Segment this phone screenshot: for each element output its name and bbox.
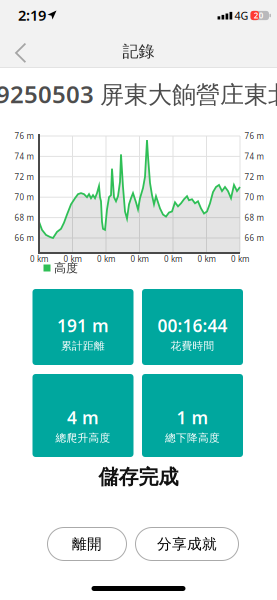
staticText: 76 m [14, 131, 33, 141]
staticText: 分享成就 [157, 535, 217, 553]
staticText: 2:19 [18, 5, 46, 25]
staticText: 儲存完成 [98, 465, 178, 489]
button[interactable]: Back [9, 38, 31, 68]
staticText: 72 m [244, 171, 263, 182]
staticText: 68 m [244, 212, 263, 223]
staticText: 0 km [63, 254, 81, 264]
staticText: 66 m [14, 233, 33, 243]
staticText: 0 km [30, 254, 48, 264]
staticText: 4 m [67, 406, 99, 429]
staticText: 70 m [244, 192, 263, 202]
staticText: 記錄 [122, 42, 154, 61]
staticText: 72 m [14, 171, 33, 182]
staticText: 0 km [231, 254, 249, 264]
staticText: 1 m [176, 406, 208, 429]
staticText: 0 km [197, 254, 215, 264]
staticText: 離開 [72, 535, 102, 553]
staticText: 總下降高度 [165, 431, 220, 444]
staticText: 70 m [14, 192, 33, 202]
staticText: 高度 [54, 261, 78, 275]
staticText: 68 m [14, 212, 33, 223]
staticText: 00:16:44 [157, 314, 227, 337]
staticText: 74 m [14, 151, 33, 162]
staticText: 20 [254, 10, 264, 21]
staticText: 0 km [164, 254, 182, 264]
staticText: 0 km [97, 254, 115, 264]
staticText: 總爬升高度 [55, 431, 110, 444]
staticText: 花費時間 [170, 339, 214, 352]
button[interactable]: 離開 [47, 527, 126, 560]
staticText: 4G [234, 8, 248, 23]
button[interactable]: 分享成就 [135, 527, 238, 560]
staticText: 76 m [244, 131, 263, 141]
staticText: 累計距離 [61, 339, 105, 352]
staticText: 0 km [130, 254, 148, 264]
staticText: 66 m [244, 233, 263, 243]
staticText: 9250503 屏東大餉營庄東北路 [0, 78, 277, 110]
staticText: 74 m [244, 151, 263, 162]
staticText: 191 m [57, 314, 109, 337]
